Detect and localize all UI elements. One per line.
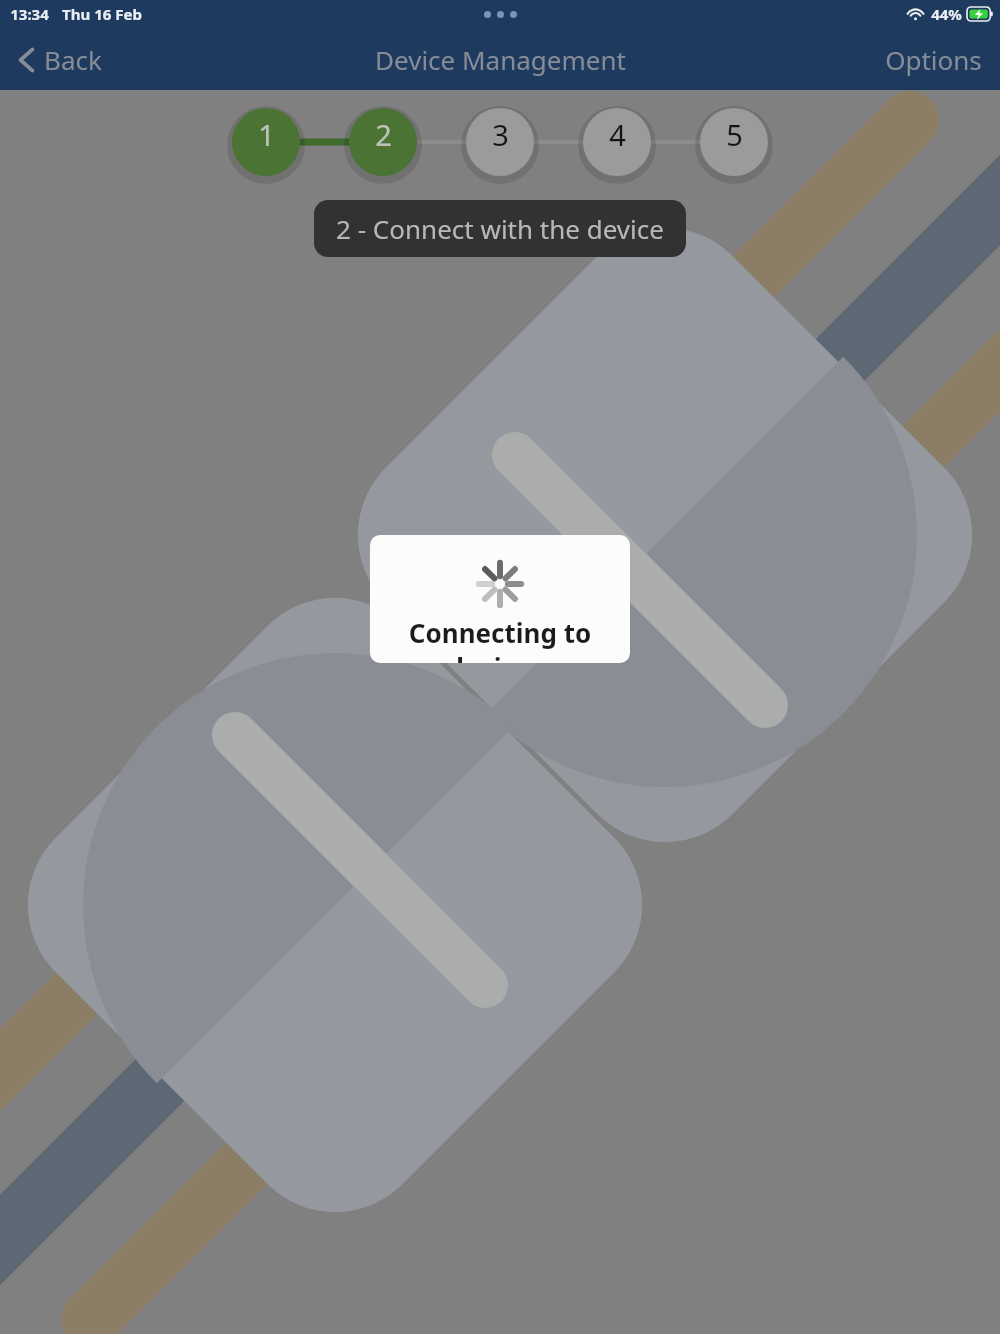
button[interactable]: Back <box>0 34 122 85</box>
staticText: 3 <box>492 115 509 154</box>
other: Battery charging <box>967 7 994 21</box>
staticText: 4 <box>609 115 626 154</box>
button[interactable]: 2 <box>349 100 417 168</box>
button[interactable]: 1 <box>232 100 300 168</box>
staticText: Device Management <box>375 42 626 77</box>
staticText: Thu 16 Feb <box>62 4 142 24</box>
other: Wi-Fi <box>906 7 925 21</box>
staticText: 1 <box>258 115 275 154</box>
staticText: 2 <box>375 115 392 154</box>
button[interactable]: 3 <box>466 100 534 168</box>
button[interactable]: 4 <box>583 100 651 168</box>
button[interactable]: 5 <box>700 100 768 168</box>
staticText: Connecting to device... <box>370 615 630 663</box>
staticText: 13:34 <box>10 4 49 24</box>
staticText: 44% <box>931 4 962 24</box>
staticText: 2 - Connect with the device <box>336 211 664 246</box>
button[interactable]: 2 - Connect with the device <box>314 200 686 257</box>
staticText: Options <box>885 42 982 77</box>
staticText: 5 <box>726 115 743 154</box>
staticText: Back <box>44 42 102 77</box>
button[interactable]: Options <box>867 32 1000 87</box>
